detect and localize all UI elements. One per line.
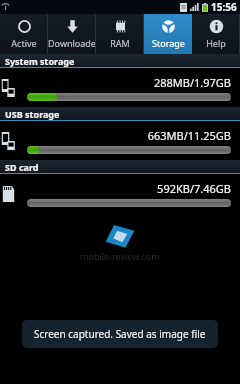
staticText: 663MB/11.25GB [27, 128, 231, 143]
button[interactable]: Storage [144, 14, 192, 54]
button[interactable]: SD card [0, 160, 240, 213]
staticText: SD card [5, 161, 39, 173]
button[interactable]: Help [192, 14, 240, 54]
staticText: System storage [5, 55, 75, 67]
button[interactable]: RAM [96, 14, 144, 54]
staticText: USB storage [5, 108, 60, 120]
staticText: 15:56 [211, 0, 237, 14]
staticText: mobile-review.com [80, 250, 160, 262]
button[interactable]: Active applic [0, 14, 48, 54]
staticText: Help [206, 37, 226, 49]
staticText: Active applic [0, 37, 48, 49]
staticText: 592KB/7.46GB [27, 181, 231, 196]
button[interactable]: USB storage [0, 107, 240, 160]
staticText: RAM [110, 37, 130, 49]
staticText: Screen captured. Saved as image file [34, 327, 206, 341]
staticText: Storage [152, 37, 185, 49]
staticText: Downloaded [48, 37, 96, 49]
button[interactable]: System storage [0, 54, 240, 107]
staticText: 288MB/1.97GB [27, 75, 231, 90]
button[interactable]: Downloaded [48, 14, 96, 54]
